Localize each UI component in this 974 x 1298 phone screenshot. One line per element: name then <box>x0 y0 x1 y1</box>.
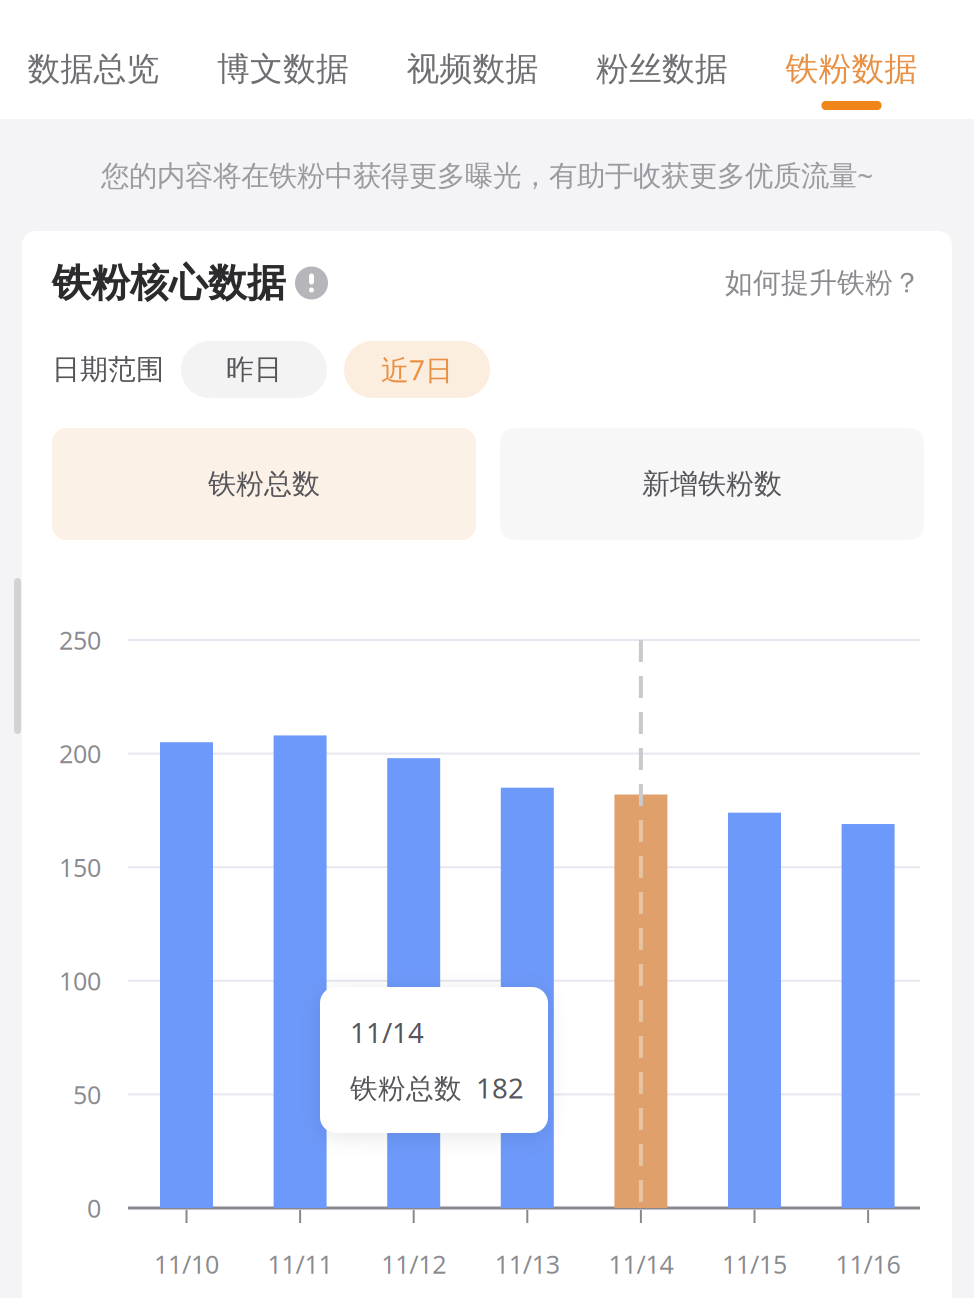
staticText: 铁粉核心数据 <box>52 259 286 307</box>
staticText: 铁粉数据 <box>785 48 917 90</box>
staticText: 近7日 <box>381 350 453 388</box>
staticText: 11/12 <box>381 1247 446 1281</box>
staticText: 150 <box>59 850 101 884</box>
staticText: 11/14 <box>608 1247 673 1281</box>
staticText: 铁粉总数 <box>208 466 320 502</box>
button[interactable]: 近7日 <box>344 341 490 398</box>
staticText: 新增铁粉数 <box>642 466 782 502</box>
staticText: 昨日 <box>226 352 282 387</box>
staticText: 11/14 <box>350 1013 424 1051</box>
button[interactable]: 新增铁粉数 <box>500 428 924 540</box>
staticText: 200 <box>59 736 101 771</box>
button[interactable]: 视频数据 <box>392 48 552 107</box>
button[interactable]: 数据总览 <box>13 48 173 107</box>
staticText: 11/15 <box>722 1247 787 1281</box>
staticText: 数据总览 <box>27 48 159 90</box>
staticText: 11/16 <box>836 1247 901 1281</box>
staticText: 100 <box>59 964 101 998</box>
button[interactable]: 昨日 <box>181 341 327 398</box>
staticText: 250 <box>59 623 101 657</box>
staticText: 如何提升铁粉？ <box>725 265 921 301</box>
button[interactable]: 铁粉总数 <box>52 428 476 540</box>
staticText: 日期范围 <box>52 352 164 387</box>
button[interactable]: 铁粉数据 <box>771 48 931 107</box>
staticText: 视频数据 <box>406 48 538 90</box>
staticText: 铁粉总数 182 <box>350 1069 524 1107</box>
staticText: 50 <box>73 1077 101 1111</box>
staticText: 博文数据 <box>217 48 349 90</box>
staticText: 0 <box>87 1191 101 1225</box>
staticText: 11/11 <box>268 1247 333 1281</box>
button[interactable]: 博文数据 <box>203 48 363 107</box>
staticText: 11/13 <box>495 1247 560 1281</box>
button[interactable]: 如何提升铁粉？ <box>725 265 921 301</box>
button[interactable]: 粉丝数据 <box>582 48 742 107</box>
staticText: 11/10 <box>154 1247 219 1281</box>
button[interactable]: 说明 <box>295 266 328 299</box>
staticText: 粉丝数据 <box>596 48 728 90</box>
staticText: 您的内容将在铁粉中获得更多曝光，有助于收获更多优质流量~ <box>101 156 873 194</box>
